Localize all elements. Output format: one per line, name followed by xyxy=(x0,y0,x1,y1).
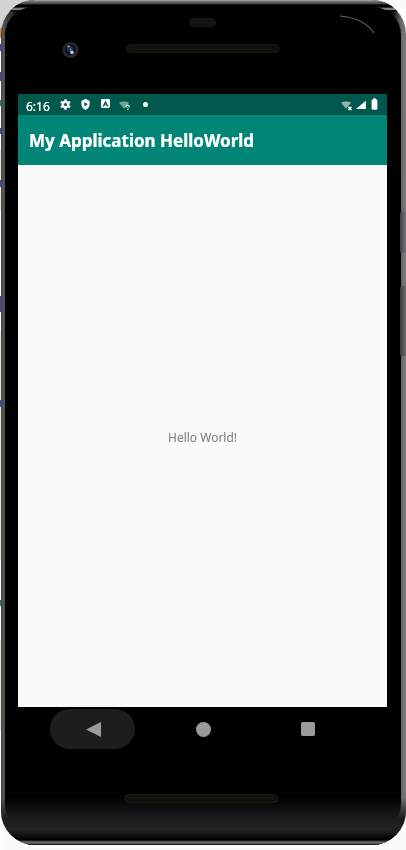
button[interactable]: Back xyxy=(50,709,135,749)
staticText: 6:16 xyxy=(26,98,50,114)
staticText: My Application HelloWorld xyxy=(29,129,255,152)
button[interactable]: My Application HelloWorld xyxy=(18,115,387,165)
button[interactable]: Recent apps xyxy=(293,714,323,744)
button[interactable]: Home xyxy=(188,714,218,744)
staticText: Hello World! xyxy=(168,429,238,445)
